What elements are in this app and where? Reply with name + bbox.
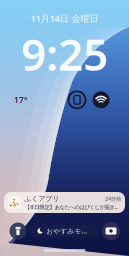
button[interactable]: Device battery widget (67, 90, 87, 110)
staticText: ふくアプリ (24, 195, 59, 203)
staticText: 17° (14, 94, 27, 105)
staticText: 【本日限定】あなたへのはぴくじが届きました！ (24, 203, 121, 210)
button[interactable]: おやすみモード (30, 225, 99, 237)
button[interactable]: Camera (99, 219, 123, 243)
button[interactable]: Flashlight (6, 219, 30, 243)
button[interactable]: Spotify widget (91, 90, 111, 110)
staticText: おやすみモード (46, 227, 92, 235)
button[interactable]: ふ (4, 192, 125, 213)
staticText: 9:25 (21, 24, 108, 83)
staticText: ふ (9, 197, 19, 208)
staticText: 11月14日 金曜日 (30, 12, 98, 24)
staticText: 24分前 (105, 195, 121, 202)
